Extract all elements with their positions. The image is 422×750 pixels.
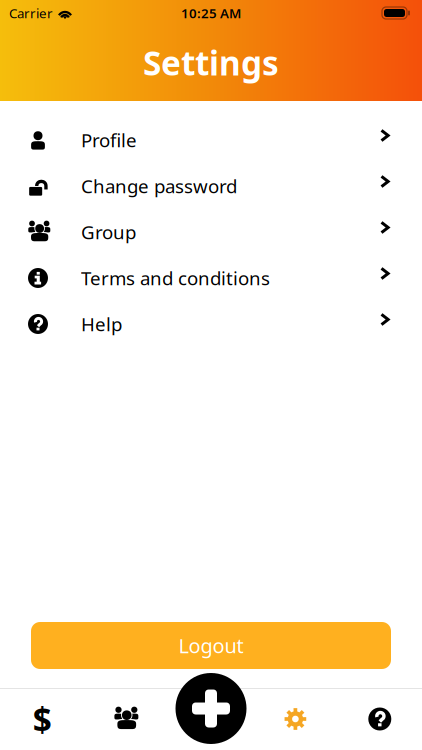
button[interactable]: Group bbox=[0, 209, 422, 255]
button[interactable]: Profile bbox=[0, 117, 422, 163]
button[interactable]: Help bbox=[338, 688, 422, 750]
staticText: Carrier bbox=[9, 4, 53, 22]
staticText: Logout bbox=[178, 632, 243, 659]
staticText: Settings bbox=[143, 40, 279, 85]
button[interactable]: Terms and conditions bbox=[0, 255, 422, 301]
button[interactable]: Help bbox=[0, 301, 422, 347]
staticText: Terms and conditions bbox=[81, 266, 270, 290]
button[interactable]: Groups bbox=[84, 688, 169, 750]
button[interactable]: Settings bbox=[253, 688, 338, 750]
staticText: Group bbox=[81, 220, 136, 244]
staticText: 10:25 AM bbox=[181, 4, 241, 22]
staticText: Profile bbox=[81, 128, 137, 152]
button[interactable]: Add bbox=[175, 673, 246, 744]
staticText: $ bbox=[33, 697, 52, 741]
button[interactable]: Change password bbox=[0, 163, 422, 209]
staticText: Change password bbox=[81, 174, 237, 198]
button[interactable]: Logout bbox=[31, 622, 391, 669]
staticText: Help bbox=[81, 312, 122, 336]
button[interactable]: Payments bbox=[0, 688, 84, 750]
